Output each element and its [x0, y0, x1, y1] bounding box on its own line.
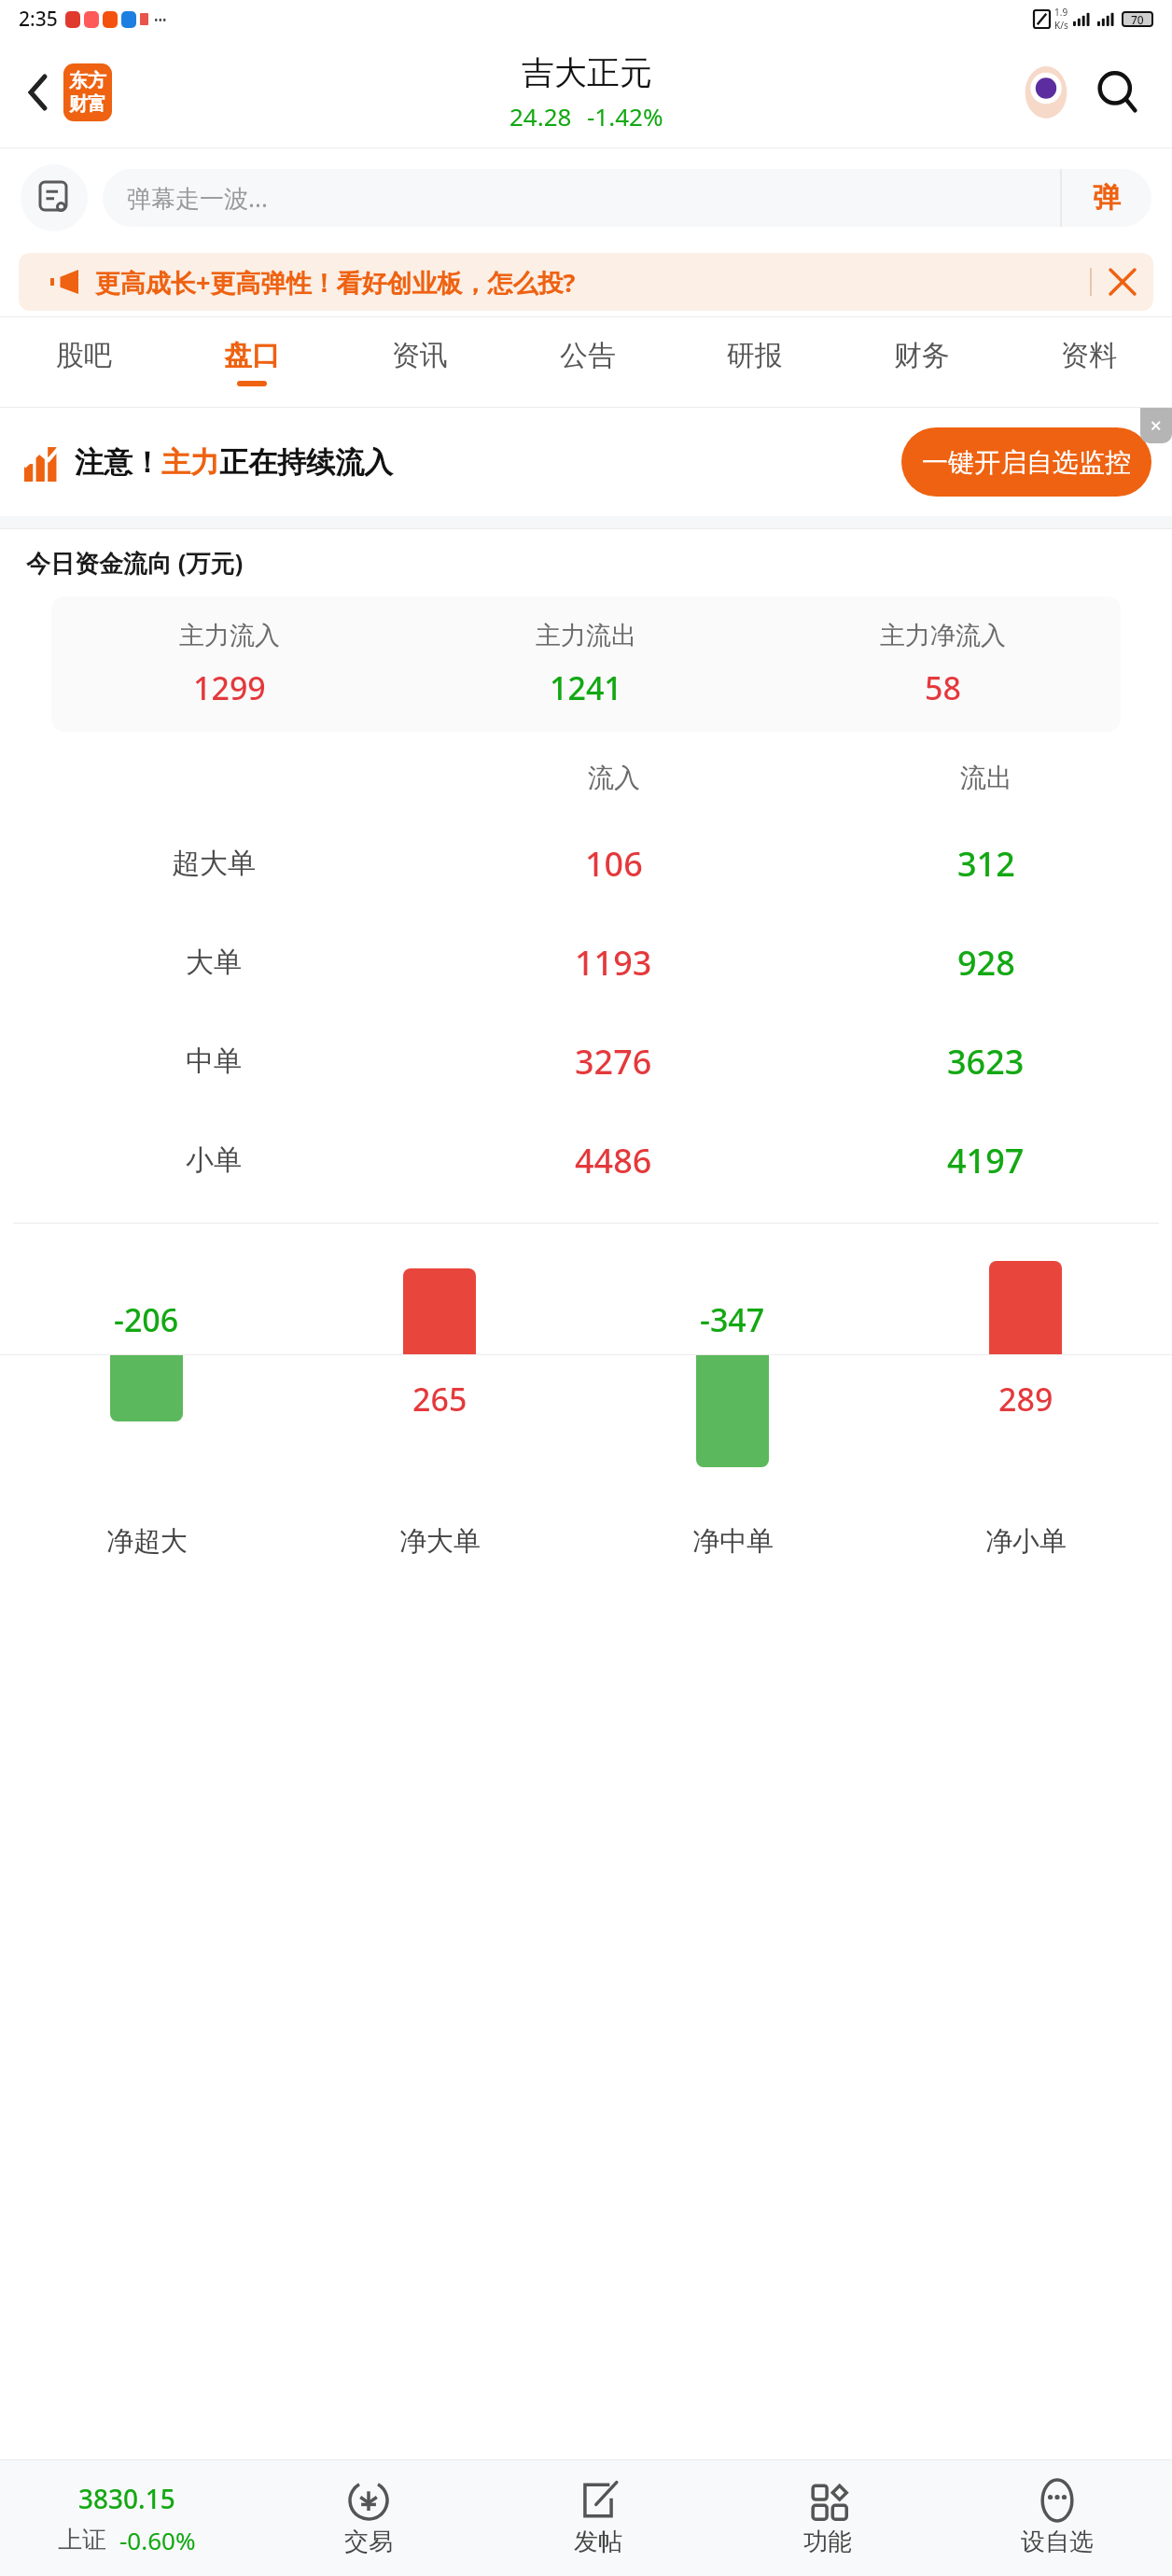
button[interactable]: 交易 — [254, 2460, 483, 2576]
staticText: 净小单 — [985, 1524, 1067, 1559]
staticText: K/s — [1054, 19, 1068, 32]
button[interactable]: 一键开启自选监控 — [901, 427, 1151, 497]
staticText: 注意！ — [75, 444, 161, 481]
staticText: 1299 — [193, 666, 266, 709]
staticText: 弹 — [1093, 180, 1121, 216]
staticText: 1.9 — [1054, 6, 1068, 19]
staticText: 中单 — [186, 1043, 242, 1079]
button[interactable]: 股吧 — [0, 317, 168, 407]
staticText: 928 — [957, 940, 1015, 986]
staticText: 流出 — [960, 762, 1012, 794]
staticText: 资料 — [1061, 338, 1117, 373]
staticText: 3276 — [575, 1039, 652, 1085]
staticText: ••• — [154, 12, 167, 27]
staticText: 主力 — [161, 444, 219, 481]
staticText: 交易 — [344, 2527, 393, 2557]
staticText: 股吧 — [56, 338, 112, 373]
button[interactable]: 资讯 — [21, 164, 88, 231]
staticText: 更高成长+更高弹性！看好创业板，怎么投? — [95, 265, 576, 300]
staticText: 盘口 — [224, 338, 280, 373]
staticText: 2:35 — [19, 6, 58, 33]
staticText: 东方 — [69, 69, 106, 92]
staticText: 公告 — [560, 338, 616, 373]
staticText: 正在持续流入 — [219, 444, 393, 481]
button[interactable]: 资讯 — [336, 317, 504, 407]
staticText: -347 — [700, 1298, 765, 1341]
staticText: 研报 — [727, 338, 783, 373]
staticText: 财富 — [69, 92, 106, 116]
staticText: 净超大 — [106, 1524, 188, 1559]
button[interactable]: 主力流入 — [51, 596, 1121, 732]
staticText: 265 — [412, 1378, 467, 1421]
staticText: 大单 — [186, 945, 242, 980]
staticText: 资讯 — [392, 338, 448, 373]
button[interactable]: 关闭广告 — [1140, 408, 1172, 443]
button[interactable]: 发帖 — [483, 2460, 713, 2576]
button[interactable]: 功能 — [713, 2460, 942, 2576]
staticText: 净大单 — [399, 1524, 481, 1559]
button[interactable]: 研报 — [671, 317, 838, 407]
button[interactable]: 盘口 — [168, 317, 336, 407]
staticText: -1.42% — [587, 100, 663, 133]
button[interactable]: 东方财富 — [63, 63, 112, 121]
button[interactable]: 财务 — [838, 317, 1005, 407]
staticText: 净中单 — [692, 1524, 774, 1559]
staticText: 今日资金流向 (万元) — [26, 546, 244, 580]
staticText: 设自选 — [1021, 2527, 1094, 2557]
staticText: -206 — [114, 1298, 179, 1341]
button[interactable]: Search — [1088, 63, 1148, 122]
staticText: 4486 — [575, 1138, 652, 1183]
staticText: 主力流入 — [179, 620, 280, 651]
button[interactable]: 资料 — [1005, 317, 1172, 407]
staticText: 弹幕走一波... — [127, 181, 268, 215]
staticText: 超大单 — [172, 846, 256, 881]
staticText: 4197 — [947, 1138, 1025, 1183]
staticText: 发帖 — [574, 2527, 622, 2557]
staticText: 289 — [998, 1378, 1053, 1421]
staticText: 3830.15 — [78, 2481, 175, 2516]
button[interactable]: 更高成长+更高弹性！看好创业板，怎么投? — [19, 253, 1153, 311]
staticText: 上证 — [58, 2525, 106, 2555]
staticText: 3623 — [947, 1039, 1025, 1085]
staticText: 吉大正元 — [522, 52, 652, 93]
staticText: 70 — [1131, 12, 1144, 27]
button[interactable]: Close — [1092, 253, 1153, 311]
staticText: 主力流出 — [536, 620, 636, 651]
button[interactable]: 注意！ — [24, 408, 1151, 516]
staticText: 功能 — [803, 2527, 852, 2557]
button[interactable]: 设自选 — [942, 2460, 1172, 2576]
staticText: -0.60% — [119, 2524, 196, 2556]
button[interactable]: 3830.15 — [0, 2460, 254, 2576]
staticText: 58 — [925, 666, 961, 709]
staticText: 一键开启自选监控 — [922, 446, 1131, 479]
button[interactable]: AI助手 — [1017, 63, 1075, 121]
staticText: ✕ — [1150, 417, 1163, 435]
button[interactable]: 中单 — [0, 1012, 1172, 1111]
staticText: 106 — [585, 841, 643, 887]
staticText: 财务 — [894, 338, 950, 373]
staticText: 1193 — [575, 940, 652, 986]
button[interactable]: 公告 — [504, 317, 671, 407]
staticText: 1241 — [550, 666, 622, 709]
staticText: 24.28 — [509, 100, 572, 133]
staticText: 小单 — [186, 1142, 242, 1178]
button[interactable]: 超大单 — [0, 814, 1172, 913]
button[interactable]: 弹幕走一波... — [103, 169, 1151, 227]
button[interactable]: 小单 — [0, 1111, 1172, 1210]
staticText: 流入 — [588, 762, 640, 794]
staticText: 312 — [957, 841, 1015, 887]
button[interactable]: Back — [13, 67, 63, 118]
staticText: 主力净流入 — [880, 620, 1006, 651]
button[interactable]: 大单 — [0, 913, 1172, 1012]
